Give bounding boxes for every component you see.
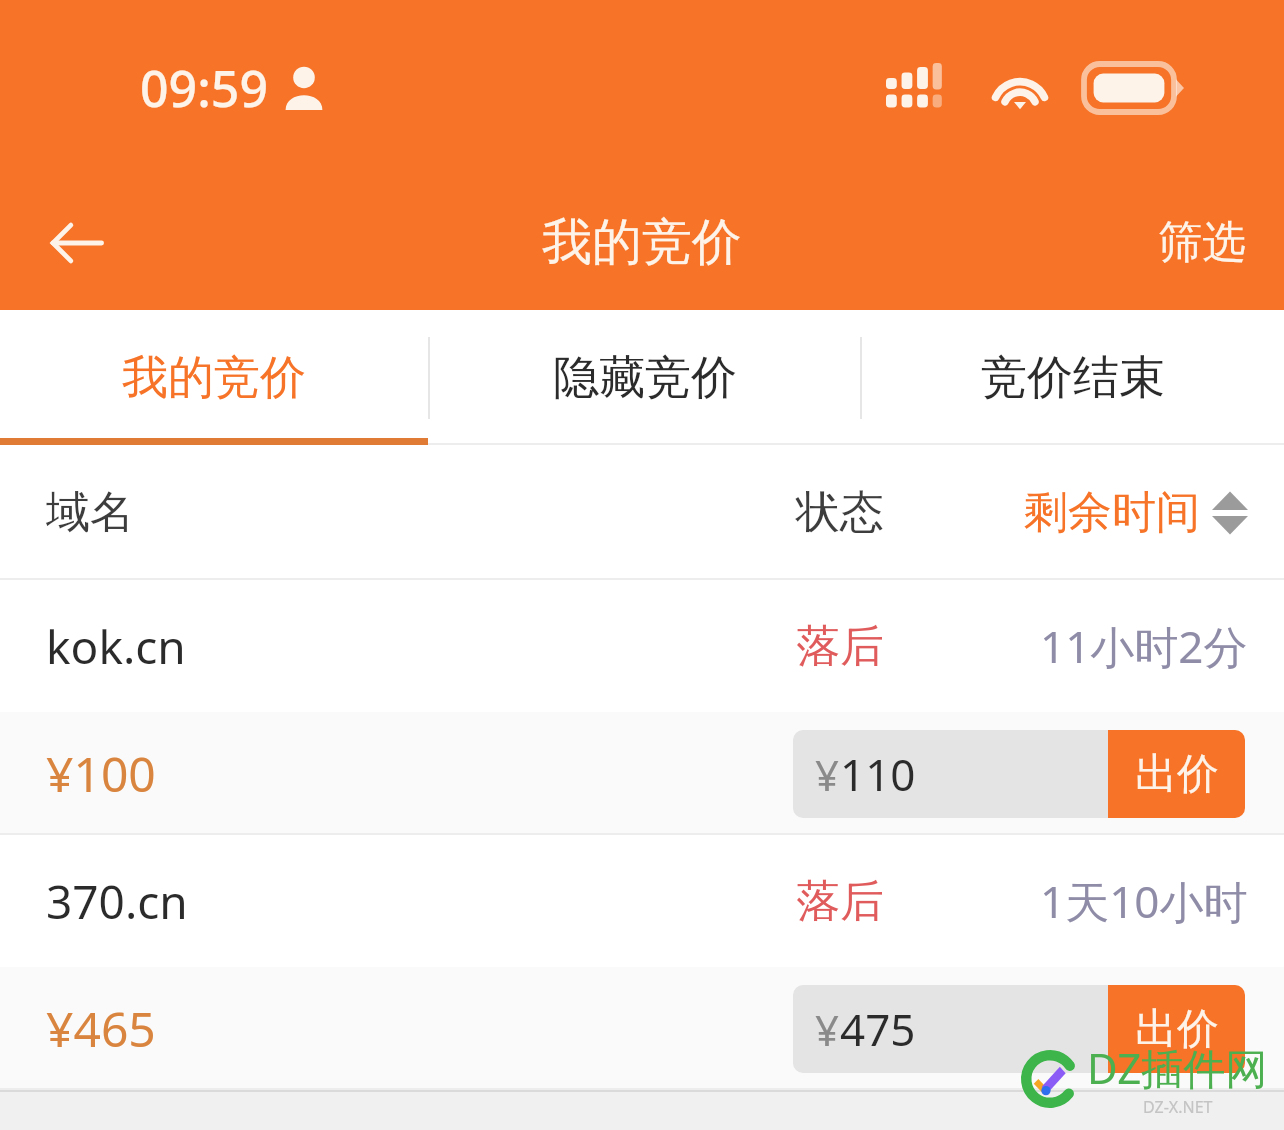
- button[interactable]: 剩余时间: [1024, 485, 1248, 540]
- button[interactable]: Back: [30, 197, 122, 289]
- staticText: 域名: [46, 485, 134, 540]
- button[interactable]: 隐藏竞价: [430, 310, 860, 445]
- button[interactable]: kok.cn: [0, 580, 1284, 712]
- staticText: 出价: [1135, 1003, 1219, 1056]
- staticText: 370.cn: [46, 870, 188, 933]
- staticText: 我的竞价: [542, 211, 742, 274]
- staticText: 110: [840, 744, 916, 804]
- staticText: 状态: [796, 485, 884, 540]
- button[interactable]: 出价: [1108, 985, 1245, 1073]
- staticText: 落后: [796, 874, 884, 929]
- staticText: 隐藏竞价: [553, 349, 737, 407]
- staticText: ¥: [815, 1001, 840, 1058]
- staticText: DZ插件网: [1087, 1039, 1268, 1096]
- button[interactable]: ¥: [793, 730, 1108, 818]
- staticText: 1天10小时: [1040, 871, 1248, 931]
- staticText: DZ-X.NET: [1143, 1096, 1213, 1118]
- staticText: 筛选: [1158, 215, 1246, 270]
- staticText: ¥100: [46, 741, 156, 806]
- staticText: 475: [840, 999, 916, 1059]
- button[interactable]: ¥: [793, 985, 1108, 1073]
- button[interactable]: 出价: [1108, 730, 1245, 818]
- staticText: 落后: [796, 619, 884, 674]
- staticText: 竞价结束: [981, 349, 1165, 407]
- staticText: 09:59: [140, 54, 268, 122]
- button[interactable]: 我的竞价: [0, 310, 428, 445]
- button[interactable]: 竞价结束: [862, 310, 1284, 445]
- staticText: 剩余时间: [1024, 485, 1200, 540]
- staticText: 我的竞价: [122, 349, 306, 407]
- staticText: 11小时2分: [1040, 616, 1248, 676]
- button[interactable]: 370.cn: [0, 835, 1284, 967]
- button[interactable]: 筛选: [1120, 195, 1284, 290]
- staticText: ¥465: [46, 996, 156, 1061]
- staticText: kok.cn: [46, 615, 186, 678]
- staticText: 出价: [1135, 748, 1219, 801]
- staticText: ¥: [815, 746, 840, 803]
